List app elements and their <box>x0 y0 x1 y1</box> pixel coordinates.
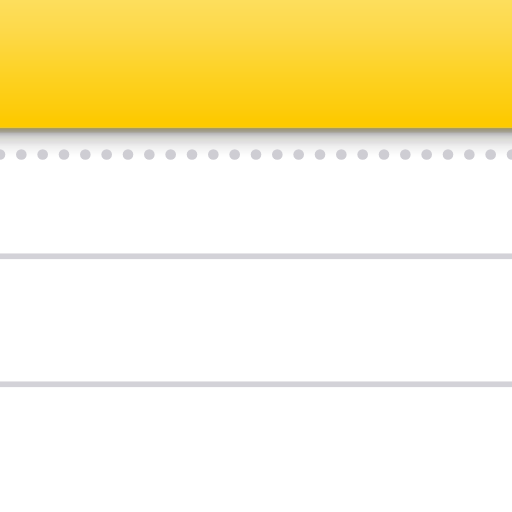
button[interactable]: Notes <box>0 0 512 128</box>
button[interactable]: Note line 1 <box>0 128 512 259</box>
button[interactable]: Note line 2 <box>0 259 512 387</box>
